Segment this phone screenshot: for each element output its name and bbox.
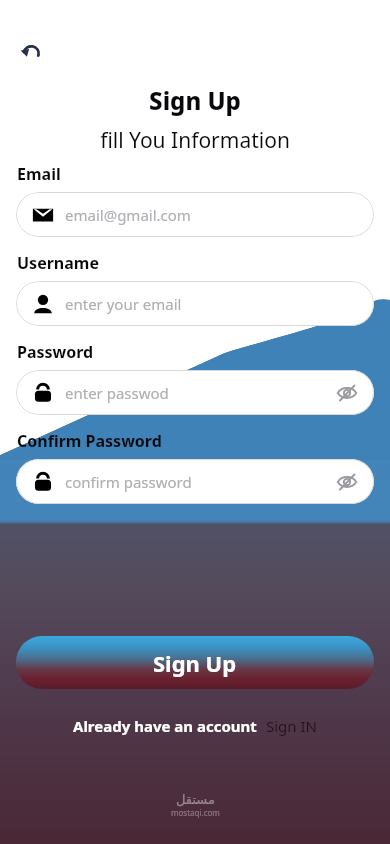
- button[interactable]: Toggle password visibility: [334, 469, 360, 495]
- button[interactable]: Sign IN: [266, 716, 317, 736]
- button[interactable]: Sign Up: [16, 636, 374, 689]
- staticText: confirm password: [65, 472, 334, 492]
- staticText: fill You Information: [0, 126, 390, 155]
- button[interactable]: confirm password: [16, 459, 374, 504]
- button[interactable]: email@gmail.com: [16, 192, 374, 237]
- staticText: Email: [17, 163, 61, 185]
- staticText: Confirm Password: [17, 430, 162, 452]
- staticText: مستقل: [176, 792, 215, 807]
- staticText: Sign Up: [153, 648, 237, 678]
- staticText: Username: [17, 252, 99, 274]
- staticText: enter your email: [65, 294, 360, 314]
- staticText: mostaqi.com: [171, 807, 220, 818]
- button[interactable]: Back: [14, 36, 48, 70]
- button[interactable]: enter passwod: [16, 370, 374, 415]
- button[interactable]: enter your email: [16, 281, 374, 326]
- staticText: Already have an account: [73, 716, 257, 736]
- staticText: Sign Up: [0, 84, 390, 117]
- staticText: Password: [17, 341, 94, 363]
- button[interactable]: Toggle password visibility: [334, 380, 360, 406]
- staticText: Sign IN: [266, 716, 317, 736]
- staticText: email@gmail.com: [65, 205, 360, 225]
- staticText: enter passwod: [65, 383, 334, 403]
